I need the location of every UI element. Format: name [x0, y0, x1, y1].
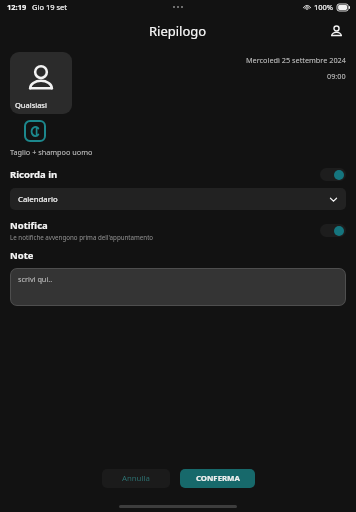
- staticText: Annulla: [122, 473, 150, 484]
- button[interactable]: Taglio + shampoo uomo: [10, 120, 356, 157]
- staticText: Note: [10, 249, 34, 262]
- button[interactable]: Interruttore attivo: [320, 168, 346, 181]
- button[interactable]: Qualsiasi: [10, 52, 72, 114]
- button[interactable]: Annulla: [102, 469, 170, 488]
- staticText: 12:19: [7, 2, 27, 12]
- staticText: Mercoledì 25 settembre 2024: [246, 55, 346, 65]
- staticText: Le notifiche avvengono prima dell'appunt…: [10, 233, 154, 241]
- staticText: Riepilogo: [149, 22, 207, 40]
- staticText: Gio 19 set: [32, 2, 67, 12]
- staticText: scrivi qui..: [18, 274, 53, 284]
- staticText: CONFERMA: [196, 473, 240, 484]
- button[interactable]: CONFERMA: [180, 469, 255, 488]
- staticText: 09:00: [327, 71, 346, 81]
- staticText: Calendario: [18, 194, 58, 205]
- button[interactable]: Calendario: [10, 188, 346, 210]
- staticText: Qualsiasi: [15, 100, 47, 110]
- button[interactable]: Interruttore attivo: [320, 224, 346, 237]
- staticText: Taglio + shampoo uomo: [10, 147, 93, 157]
- button[interactable]: Profilo utente: [323, 18, 349, 44]
- staticText: Notifica: [10, 219, 48, 232]
- staticText: 100%: [314, 2, 334, 12]
- staticText: Ricorda in: [10, 168, 58, 181]
- button[interactable]: scrivi qui..: [10, 268, 346, 306]
